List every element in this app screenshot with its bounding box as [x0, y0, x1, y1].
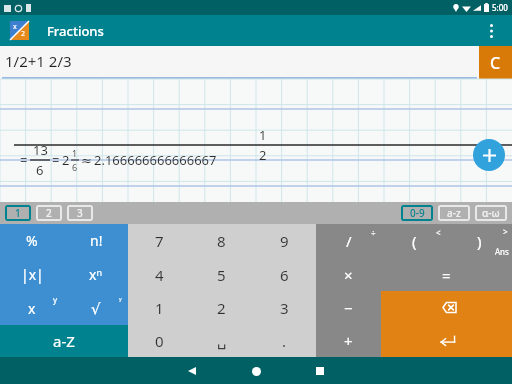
staticText: a-Z	[53, 331, 75, 351]
button[interactable]: 0-9	[401, 205, 433, 221]
button[interactable]: /	[316, 224, 382, 258]
staticText: Fractions	[47, 22, 104, 40]
button[interactable]: x	[0, 291, 64, 325]
button[interactable]: 6	[253, 258, 316, 291]
button[interactable]: More options	[478, 18, 504, 44]
button[interactable]: 5	[190, 258, 253, 291]
staticText: 5:00	[492, 2, 508, 13]
staticText: ␣	[217, 332, 227, 349]
button[interactable]: 2	[190, 291, 253, 324]
staticText: 2	[21, 29, 26, 39]
button[interactable]: Back	[175, 361, 209, 381]
button[interactable]: 1	[5, 205, 31, 221]
staticText: xⁿ	[89, 265, 103, 284]
button[interactable]: a-z	[438, 205, 470, 221]
staticText: ≈	[81, 153, 92, 168]
staticText: ÷	[371, 227, 376, 238]
staticText: 3	[280, 298, 289, 318]
staticText: =	[20, 151, 28, 169]
button[interactable]: 1/2+1 2/3	[0, 46, 479, 79]
staticText: 6	[36, 161, 44, 179]
staticText: 1	[155, 298, 164, 318]
staticText: 2	[259, 146, 267, 164]
staticText: 1	[259, 126, 267, 144]
staticText: 2.166666666666667	[94, 151, 217, 169]
staticText: =	[52, 151, 60, 169]
staticText: Ans	[495, 246, 509, 257]
button[interactable]: α-ω	[475, 205, 507, 221]
staticText: 1/2+1 2/3	[5, 51, 72, 71]
staticText: |x|	[21, 265, 44, 284]
staticText: 9	[280, 231, 289, 251]
button[interactable]: Enter	[381, 324, 512, 357]
staticText: 2	[62, 151, 70, 169]
button[interactable]: Home	[239, 361, 273, 381]
button[interactable]: Recents	[303, 361, 337, 381]
button[interactable]: +	[316, 324, 381, 357]
staticText: α-ω	[482, 206, 500, 220]
staticText: 1	[72, 147, 78, 159]
staticText: 3	[77, 206, 83, 220]
staticText: 2	[217, 298, 226, 318]
staticText: 7	[155, 231, 164, 251]
button[interactable]: a-Z	[0, 325, 128, 357]
button[interactable]: n!	[64, 224, 128, 257]
staticText: y	[53, 294, 58, 305]
staticText: 2	[46, 206, 52, 220]
staticText: 4	[155, 265, 164, 285]
staticText: 13	[33, 141, 48, 159]
button[interactable]: −	[316, 291, 381, 324]
staticText: C	[490, 52, 501, 74]
staticText: n!	[90, 231, 103, 250]
staticText: /	[346, 231, 352, 251]
staticText: .	[282, 331, 287, 351]
staticText: a-z	[447, 206, 461, 220]
staticText: x	[13, 22, 17, 32]
button[interactable]: Add	[473, 139, 505, 171]
staticText: =	[442, 265, 451, 285]
button[interactable]: ␣	[190, 324, 253, 357]
button[interactable]: 4	[128, 258, 190, 291]
staticText: √	[91, 300, 101, 317]
staticText: 0	[155, 331, 164, 351]
staticText: >	[503, 226, 508, 237]
button[interactable]: 1	[128, 291, 190, 324]
staticText: ʸ	[119, 294, 122, 305]
button[interactable]: 3	[67, 205, 93, 221]
button[interactable]: xⁿ	[64, 257, 128, 291]
button[interactable]: 8	[190, 224, 253, 258]
button[interactable]: (	[382, 224, 447, 258]
staticText: 6	[72, 161, 78, 173]
staticText: ×	[344, 265, 353, 285]
staticText: (	[412, 231, 417, 251]
staticText: 1	[15, 206, 21, 220]
staticText: x	[28, 299, 36, 318]
staticText: −	[344, 298, 353, 318]
button[interactable]: |x|	[0, 257, 64, 291]
button[interactable]: 3	[253, 291, 316, 324]
button[interactable]: 0	[128, 324, 190, 357]
button[interactable]: C	[479, 46, 512, 79]
staticText: 8	[217, 231, 226, 251]
staticText: 5	[217, 265, 226, 285]
staticText: )	[477, 231, 482, 251]
button[interactable]: Backspace	[381, 291, 512, 324]
staticText: +	[344, 331, 353, 351]
button[interactable]: √	[64, 291, 128, 325]
button[interactable]: .	[253, 324, 316, 357]
button[interactable]: 2	[36, 205, 62, 221]
button[interactable]: 9	[253, 224, 316, 258]
button[interactable]: ×	[316, 258, 381, 291]
staticText: 0-9	[410, 206, 425, 220]
staticText: 6	[280, 265, 289, 285]
button[interactable]: %	[0, 224, 64, 257]
button[interactable]: 7	[128, 224, 190, 258]
button[interactable]: )	[447, 224, 512, 258]
staticText: <	[436, 227, 441, 238]
button[interactable]: =	[381, 258, 512, 291]
staticText: %	[26, 231, 38, 250]
